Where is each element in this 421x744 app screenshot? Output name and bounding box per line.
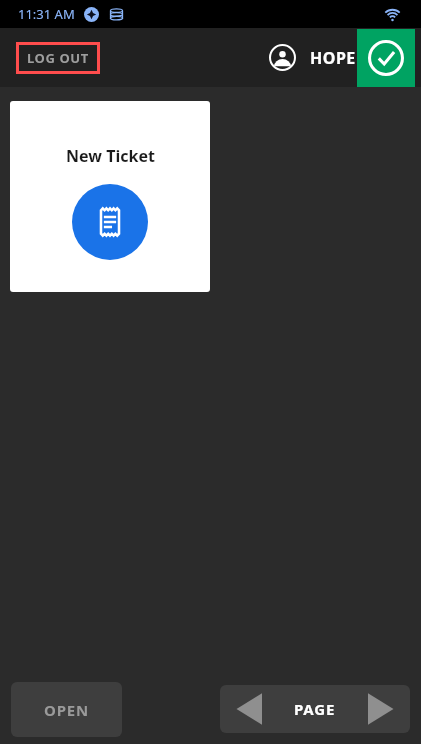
button[interactable]: New Ticket — [10, 101, 210, 292]
staticText: PAGE — [294, 699, 336, 719]
button[interactable]: Next page — [352, 685, 410, 733]
button[interactable]: LOG OUT — [16, 42, 100, 74]
staticText: OPEN — [44, 700, 89, 720]
staticText: New Ticket — [66, 145, 155, 167]
button[interactable]: Previous page — [220, 685, 278, 733]
button[interactable]: OPEN — [11, 682, 122, 737]
staticText: HOPE — [310, 47, 356, 69]
staticText: 11:31 AM — [18, 5, 75, 23]
other: Account — [269, 44, 296, 71]
button[interactable]: Confirm — [357, 29, 415, 87]
button[interactable]: Account — [269, 44, 356, 71]
staticText: LOG OUT — [27, 49, 89, 67]
